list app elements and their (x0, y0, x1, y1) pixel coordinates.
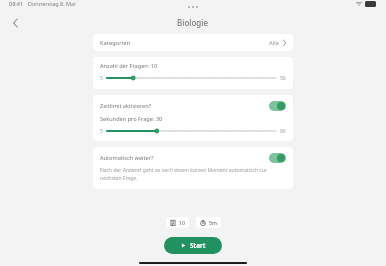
button[interactable]: Estimated time (196, 217, 221, 228)
staticText: Biologie (177, 17, 209, 28)
staticText: 5 (100, 128, 103, 135)
staticText: 5 (100, 75, 103, 82)
button[interactable]: Back (9, 16, 22, 29)
staticText: Alle (269, 39, 279, 47)
staticText: Start (190, 241, 206, 250)
staticText: 09:41 (9, 0, 24, 7)
staticText: 5m (209, 219, 217, 226)
button[interactable]: Toggle auto advance (269, 153, 286, 163)
button[interactable]: Slider (107, 127, 276, 135)
staticText: Automatisch weiter? (100, 154, 154, 162)
button[interactable]: Kategorien (93, 34, 293, 51)
staticText: Zeitlimit aktivieren? (100, 102, 152, 110)
staticText: 50 (280, 75, 286, 82)
staticText: Donnerstag 8. Mai (28, 0, 76, 7)
button[interactable]: Slider (107, 74, 276, 82)
staticText: 90 (280, 128, 286, 135)
button[interactable]: Questions count (166, 217, 189, 228)
staticText: Kategorien (100, 39, 131, 47)
staticText: Anzahl der Fragen: 10 (100, 62, 158, 70)
staticText: Nach der Antwort geht es nach einem kurz… (100, 167, 286, 181)
staticText: 10 (179, 219, 185, 226)
button[interactable]: Start (164, 237, 222, 254)
button[interactable]: Toggle time limit (269, 101, 286, 111)
staticText: Sekunden pro Frage: 30 (100, 115, 163, 123)
